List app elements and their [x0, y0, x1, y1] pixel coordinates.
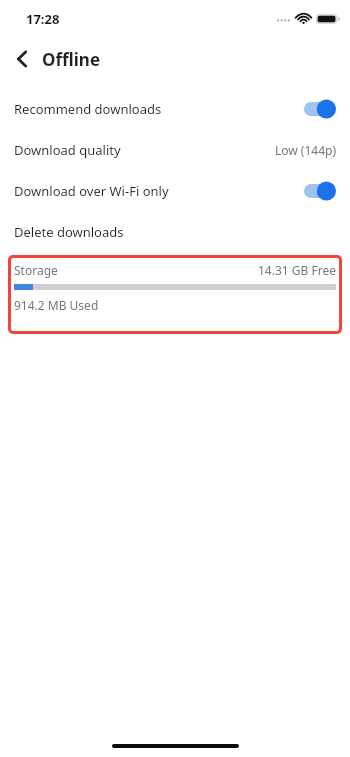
staticText: Recommend downloads [14, 100, 162, 118]
button[interactable]: Delete downloads [0, 211, 350, 252]
staticText: Delete downloads [14, 223, 124, 241]
staticText: Offline [42, 48, 101, 71]
staticText: 14.31 GB Free [258, 262, 336, 278]
staticText: 17:28 [26, 10, 60, 28]
staticText: Download over Wi-Fi only [14, 182, 169, 200]
staticText: Storage [14, 262, 58, 278]
staticText: Low (144p) [274, 142, 336, 158]
staticText: Download quality [14, 141, 121, 159]
button[interactable]: Recommend downloads [0, 88, 350, 129]
button[interactable]: Download over Wi-Fi only [0, 170, 350, 211]
staticText: 914.2 MB Used [14, 297, 99, 313]
button[interactable]: Back [6, 43, 38, 75]
button[interactable]: Download quality [0, 129, 350, 170]
